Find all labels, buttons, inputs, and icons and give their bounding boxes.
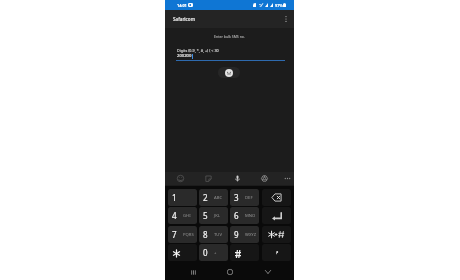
- button[interactable]: More: [281, 172, 294, 185]
- button[interactable]: Home: [224, 266, 236, 278]
- staticText: 7: [172, 229, 177, 240]
- button[interactable]: 0: [199, 244, 228, 261]
- button[interactable]: Settings: [258, 172, 271, 185]
- staticText: JKL: [214, 213, 220, 219]
- button[interactable]: 5: [199, 207, 228, 224]
- staticText: 200200: [177, 53, 192, 59]
- staticText: TUV: [214, 232, 222, 238]
- staticText: GHI: [183, 213, 191, 219]
- staticText: 8: [203, 229, 208, 240]
- staticText: 14:01: [177, 3, 187, 8]
- staticText: MNO: [245, 213, 256, 219]
- staticText: ABC: [214, 195, 223, 201]
- button[interactable]: Emoji: [174, 172, 187, 185]
- staticText: PQRS: [183, 232, 194, 238]
- button[interactable]: Comma: [262, 244, 291, 261]
- button[interactable]: Hash: [230, 244, 259, 261]
- staticText: 0: [203, 247, 208, 258]
- button[interactable]: 8: [199, 226, 228, 243]
- staticText: Digits (0-9, *, #, +) ( < 30: [177, 48, 219, 53]
- button[interactable]: Recent apps: [187, 266, 199, 278]
- button[interactable]: Backspace: [262, 189, 291, 206]
- staticText: 5: [203, 210, 208, 221]
- staticText: Enter bulk SMS no.: [214, 34, 245, 39]
- staticText: +: [214, 250, 217, 256]
- button[interactable]: Symbols: [262, 226, 291, 243]
- button[interactable]: 3: [230, 189, 259, 206]
- button[interactable]: 4: [168, 207, 197, 224]
- button[interactable]: 7: [168, 226, 197, 243]
- button[interactable]: 2: [199, 189, 228, 206]
- staticText: 2: [203, 192, 208, 203]
- button[interactable]: Hide keyboard: [262, 266, 274, 278]
- staticText: 6: [234, 210, 239, 221]
- button[interactable]: Enter: [262, 207, 291, 224]
- button[interactable]: 6: [230, 207, 259, 224]
- staticText: 3: [234, 192, 239, 203]
- staticText: 9: [234, 229, 239, 240]
- button[interactable]: Send bulk SMS: [218, 67, 240, 78]
- button[interactable]: 1: [168, 189, 197, 206]
- button[interactable]: Stickers: [202, 172, 215, 185]
- staticText: Safaricom: [173, 16, 196, 22]
- staticText: 97%: [275, 3, 283, 8]
- button[interactable]: Voice input: [231, 172, 244, 185]
- button[interactable]: More options: [280, 13, 292, 25]
- button[interactable]: Star: [168, 244, 197, 261]
- staticText: 1: [172, 192, 177, 203]
- button[interactable]: 9: [230, 226, 259, 243]
- staticText: WXYZ: [245, 232, 257, 238]
- staticText: DEF: [245, 195, 253, 201]
- staticText: 4: [172, 210, 177, 221]
